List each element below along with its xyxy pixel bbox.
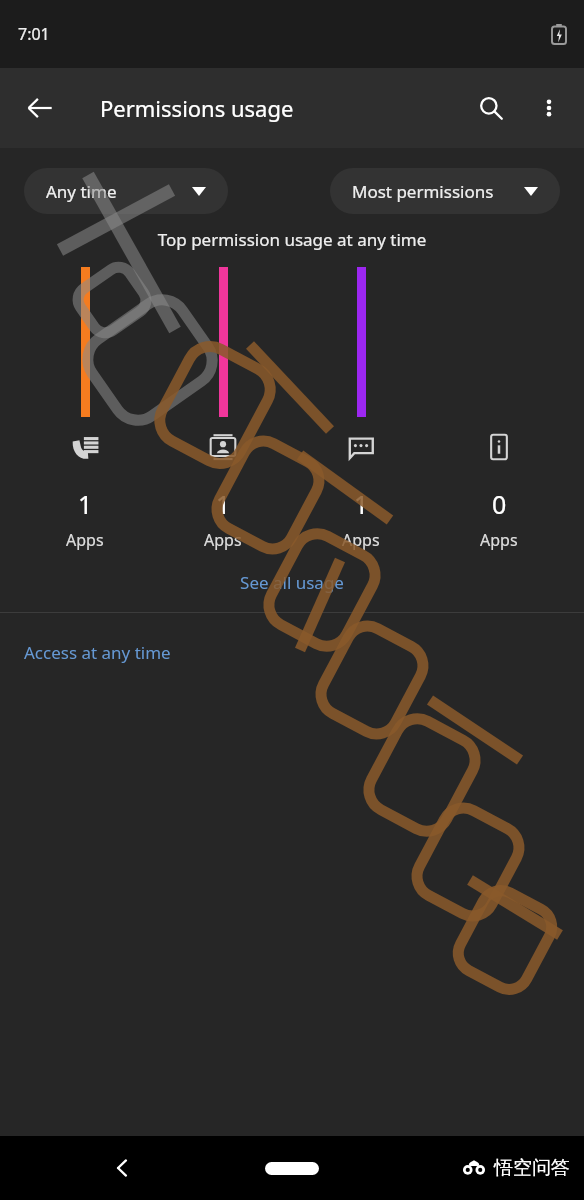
button[interactable]: Access at any time xyxy=(0,635,584,670)
staticText: Most permissions xyxy=(352,180,494,203)
button[interactable]: 1 xyxy=(16,267,154,551)
staticText: 1 xyxy=(354,487,369,521)
button[interactable]: 1 xyxy=(154,267,292,551)
staticText: 1 xyxy=(216,487,231,521)
button[interactable]: Home xyxy=(265,1162,319,1175)
staticText: Apps xyxy=(480,529,518,551)
button[interactable]: Back xyxy=(100,1146,144,1190)
staticText: Top permission usage at any time xyxy=(0,228,584,251)
button[interactable]: Back xyxy=(14,82,66,134)
button[interactable]: Most permissions xyxy=(330,168,560,214)
staticText: Apps xyxy=(342,529,380,551)
button[interactable]: Any time xyxy=(24,168,228,214)
button[interactable]: See all usage xyxy=(0,565,584,600)
button[interactable]: 0 xyxy=(430,267,568,551)
staticText: 1 xyxy=(78,487,93,521)
staticText: Permissions usage xyxy=(100,93,294,123)
staticText: 悟空问答 xyxy=(494,1156,570,1180)
button[interactable]: Search xyxy=(466,83,516,133)
staticText: Any time xyxy=(46,180,117,203)
staticText: 0 xyxy=(492,487,507,521)
staticText: Apps xyxy=(66,529,104,551)
button[interactable]: More options xyxy=(526,85,572,131)
staticText: Access at any time xyxy=(24,641,171,664)
staticText: 7:01 xyxy=(18,23,50,45)
button[interactable]: 1 xyxy=(292,267,430,551)
staticText: Apps xyxy=(204,529,242,551)
